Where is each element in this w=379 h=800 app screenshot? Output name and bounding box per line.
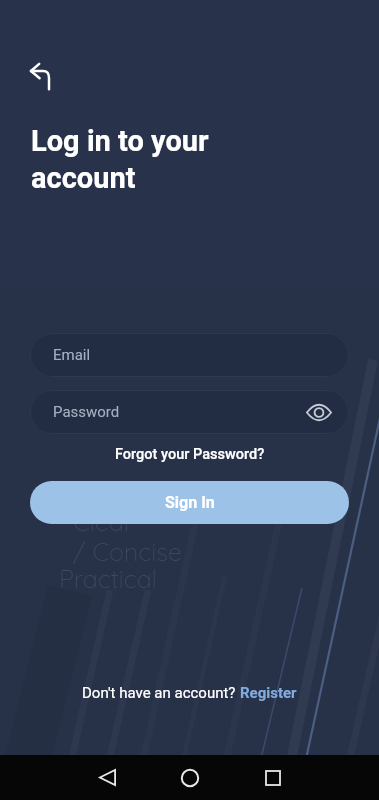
button[interactable]: Sign In (30, 481, 349, 524)
button[interactable] (18, 54, 62, 98)
button[interactable]: Email (30, 333, 349, 377)
button[interactable] (74, 755, 140, 800)
staticText: Clear / Concise (73, 506, 182, 567)
staticText: Practical (59, 563, 158, 594)
button[interactable]: Register (240, 684, 297, 702)
button[interactable] (240, 755, 306, 800)
staticText: Don't have an account? (82, 684, 240, 702)
staticText: Sign In (165, 493, 215, 512)
button[interactable] (301, 394, 337, 430)
button[interactable] (157, 755, 223, 800)
staticText: Log in to your account (31, 124, 209, 195)
button[interactable]: Password (30, 390, 349, 434)
button[interactable]: Forgot your Password? (115, 446, 265, 463)
staticText: Password (53, 403, 120, 421)
staticText: Email (53, 346, 91, 364)
